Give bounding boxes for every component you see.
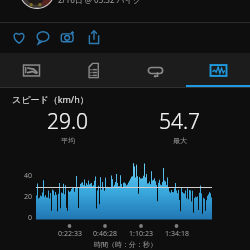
button[interactable]: Analysis	[187, 53, 250, 87]
button[interactable]: Laps	[124, 53, 187, 87]
button[interactable]: Share	[82, 22, 106, 51]
staticText: 20	[2, 192, 32, 202]
staticText: 0:46:28	[85, 229, 125, 239]
staticText: 1:34:18	[157, 229, 197, 239]
button[interactable]: Map	[0, 53, 62, 87]
staticText: 最大	[173, 136, 187, 145]
staticText: 時間（時：分：秒）	[94, 240, 157, 249]
staticText: 0:22:33	[50, 229, 90, 239]
staticText: 54.7	[159, 107, 201, 136]
button[interactable]: Comment	[31, 22, 55, 51]
staticText: 平均	[61, 136, 75, 145]
staticText: 0	[2, 213, 32, 223]
button[interactable]: Details	[62, 53, 124, 87]
button[interactable]: Like	[7, 22, 31, 51]
staticText: スピード（km/h）	[12, 93, 89, 105]
staticText: 2/16日 @ 03:32 バイク	[58, 0, 142, 5]
staticText: 29.0	[47, 107, 89, 136]
staticText: 40	[2, 171, 32, 181]
button[interactable]: Add photo	[56, 22, 80, 51]
staticText: 1:10:23	[121, 229, 161, 239]
